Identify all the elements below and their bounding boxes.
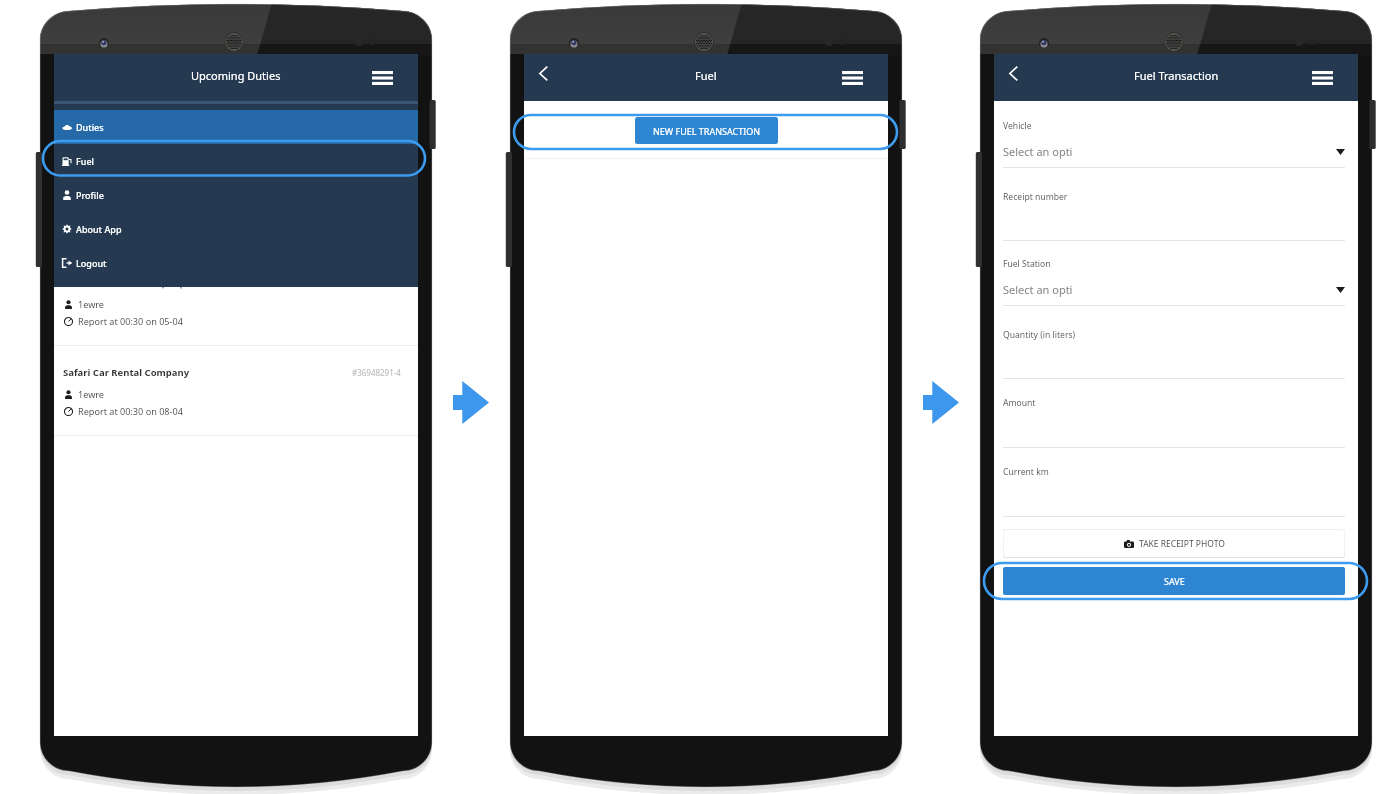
button[interactable]: About App bbox=[54, 212, 418, 246]
staticText: 1ewre bbox=[78, 388, 104, 400]
staticText: Upcoming Duties bbox=[191, 68, 281, 83]
other: Next step bbox=[453, 381, 489, 424]
staticText: #36948291-4 bbox=[352, 367, 401, 378]
button[interactable]: Back bbox=[529, 59, 557, 87]
staticText: Report at 00:30 on 08-04 bbox=[78, 405, 183, 417]
staticText: Receipt number bbox=[1003, 191, 1068, 203]
staticText: Logout bbox=[76, 257, 107, 269]
button[interactable]: Profile bbox=[54, 178, 418, 212]
button[interactable]: SAVE bbox=[1003, 567, 1345, 595]
button[interactable]: Logout bbox=[54, 246, 418, 280]
staticText: Fuel bbox=[76, 155, 94, 167]
other: Next step bbox=[923, 381, 959, 424]
staticText: SAVE bbox=[1164, 575, 1185, 587]
staticText: Current km bbox=[1003, 466, 1049, 478]
staticText: NEW FUEL TRANSACTION bbox=[653, 125, 761, 137]
staticText: Fuel Transaction bbox=[1134, 68, 1219, 83]
staticText: Select an opti bbox=[1003, 282, 1073, 297]
staticText: About App bbox=[76, 223, 122, 235]
button[interactable]: Duties bbox=[54, 110, 418, 144]
staticText: Fuel bbox=[695, 68, 717, 83]
staticText: Vehicle bbox=[1003, 120, 1032, 132]
button[interactable]: Select an opti bbox=[1003, 282, 1345, 297]
button[interactable]: Open navigation menu bbox=[366, 62, 398, 94]
staticText: 1ewre bbox=[78, 298, 104, 310]
staticText: Safari Car Rental Company bbox=[63, 366, 190, 379]
staticText: Select an opti bbox=[1003, 144, 1073, 159]
button[interactable]: Back bbox=[999, 59, 1027, 87]
button[interactable]: Safari Car Rental Company bbox=[54, 346, 418, 436]
staticText: Amount bbox=[1003, 397, 1036, 409]
staticText: Profile bbox=[76, 189, 104, 201]
staticText: Report at 00:30 on 05-04 bbox=[78, 315, 183, 327]
button[interactable]: Open navigation menu bbox=[836, 62, 868, 94]
staticText: Quantity (in liters) bbox=[1003, 329, 1076, 341]
staticText: Duties bbox=[76, 121, 104, 133]
staticText: Fuel Station bbox=[1003, 258, 1051, 270]
button[interactable]: NEW FUEL TRANSACTION bbox=[635, 117, 778, 144]
button[interactable]: 1ewre bbox=[54, 287, 418, 346]
button[interactable]: Fuel bbox=[54, 144, 418, 178]
button[interactable]: TAKE RECEIPT PHOTO bbox=[1004, 530, 1344, 557]
button[interactable]: Select an opti bbox=[1003, 144, 1345, 159]
button[interactable]: Open navigation menu bbox=[1306, 62, 1338, 94]
staticText: TAKE RECEIPT PHOTO bbox=[1139, 538, 1225, 550]
